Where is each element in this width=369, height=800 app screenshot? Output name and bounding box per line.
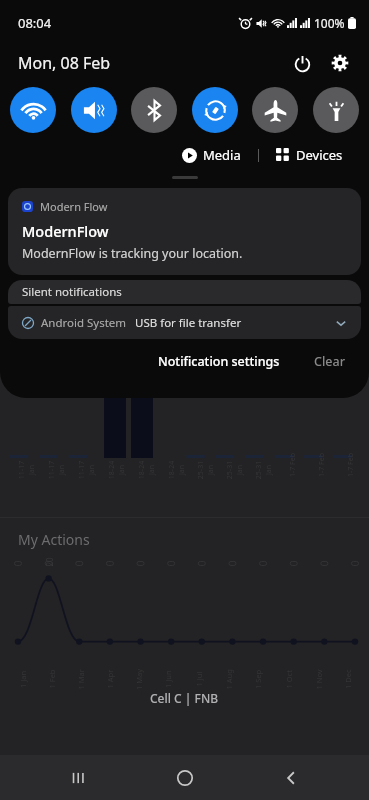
staticText: 25-31 Jan <box>224 455 244 484</box>
staticText: Clear <box>314 353 345 370</box>
staticText: 1 Feb <box>46 669 56 688</box>
staticText: 08:04 <box>18 14 52 32</box>
staticText: 1 Mar <box>75 668 85 689</box>
button[interactable]: Back <box>262 755 320 800</box>
button[interactable]: Airplane mode <box>252 87 298 133</box>
button[interactable]: Sound mute <box>71 87 117 133</box>
staticText: 1 Jul <box>193 671 203 686</box>
staticText: 1 Dec <box>343 669 353 689</box>
button[interactable]: Silent notifications <box>8 280 361 304</box>
staticText: Mon, 08 Feb <box>18 52 111 74</box>
staticText: Notification settings <box>158 353 280 370</box>
staticText: 1-7 Feb <box>288 453 298 477</box>
staticText: Silent notifications <box>22 284 122 300</box>
staticText: My Actions <box>18 530 90 549</box>
button[interactable]: Media <box>178 143 245 167</box>
staticText: 1-7 Feb <box>317 453 327 477</box>
button[interactable]: Settings <box>325 48 355 78</box>
staticText: Android System <box>41 315 127 331</box>
staticText: ModernFlow <box>22 221 109 241</box>
staticText: USB for file transfer <box>135 315 242 331</box>
staticText: 1 Jan <box>18 670 28 688</box>
staticText: 20 <box>43 556 54 566</box>
button[interactable]: Android System <box>8 306 361 339</box>
button[interactable]: Clear <box>308 349 351 374</box>
staticText: 1 Aug <box>223 668 233 689</box>
staticText: Cell C | FNB <box>150 690 219 706</box>
staticText: 18-24 Jan <box>107 455 127 485</box>
button[interactable]: Auto rotate <box>192 87 238 133</box>
staticText: 1 Oct <box>283 669 293 688</box>
staticText: 11-17 Jan <box>77 455 97 485</box>
staticText: 18-24 Jan <box>137 455 157 485</box>
staticText: 100% <box>314 15 345 31</box>
staticText: 1 Apr <box>104 669 114 688</box>
button[interactable]: Flashlight <box>313 87 359 133</box>
staticText: 1 May <box>134 668 144 690</box>
staticText: Media <box>203 146 241 164</box>
staticText: Modern Flow <box>40 199 108 214</box>
button[interactable]: Recents <box>49 755 107 800</box>
staticText: 1 Nov <box>313 668 323 689</box>
staticText: 1 Jun <box>163 670 173 688</box>
staticText: ModernFlow is tracking your location. <box>22 245 243 262</box>
staticText: 25-31 Jan <box>195 455 215 484</box>
button[interactable]: Home <box>156 755 214 800</box>
staticText: 11-17 Jan <box>17 455 37 485</box>
button[interactable]: Power <box>287 48 317 78</box>
staticText: 11-17 Jan <box>47 455 67 485</box>
staticText: 25-31 Jan <box>253 455 273 484</box>
button[interactable]: Wi-Fi <box>10 87 56 133</box>
staticText: 1-7 Feb <box>346 453 356 477</box>
button[interactable]: Bluetooth <box>131 87 177 133</box>
button[interactable]: Notification settings <box>152 349 286 374</box>
staticText: 1 Sep <box>253 669 263 689</box>
staticText: Devices <box>296 146 343 164</box>
button[interactable]: Modern Flow <box>8 188 361 275</box>
button[interactable]: Devices <box>272 143 347 167</box>
